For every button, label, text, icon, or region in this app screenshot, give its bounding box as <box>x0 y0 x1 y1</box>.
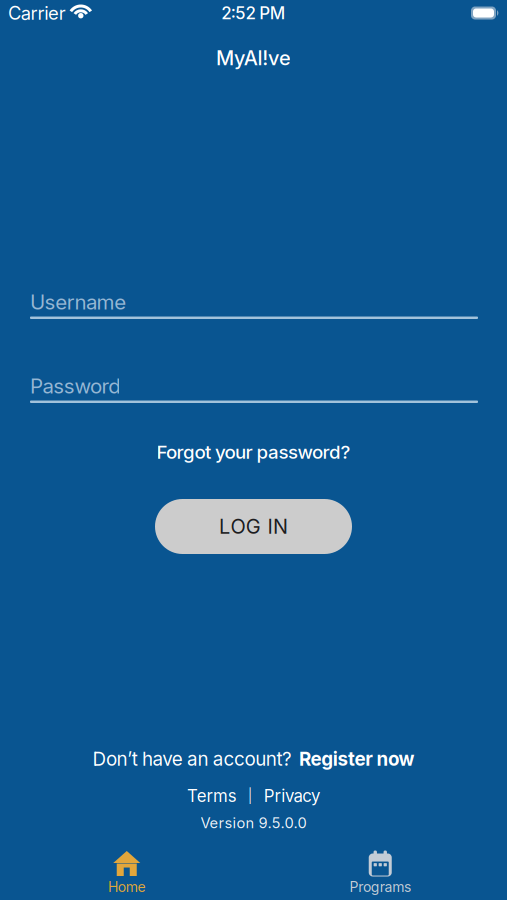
button[interactable]: Terms <box>187 786 237 806</box>
button[interactable]: Don’t have an account? <box>92 748 415 770</box>
staticText: Forgot your password? <box>156 441 350 463</box>
staticText: Programs <box>349 878 411 895</box>
staticText: 2:52 PM <box>221 3 286 23</box>
button[interactable]: LOG IN <box>155 499 352 554</box>
staticText: Register now <box>299 748 415 770</box>
staticText: | <box>248 787 253 804</box>
staticText: Password <box>30 373 121 398</box>
staticText: LOG IN <box>219 514 288 539</box>
button[interactable]: Privacy <box>264 786 320 806</box>
staticText: Home <box>108 878 145 895</box>
staticText: Version 9.5.0.0 <box>200 814 306 832</box>
staticText: Privacy <box>264 786 320 806</box>
staticText: Carrier <box>8 2 66 24</box>
button[interactable]: Programs <box>253 851 507 894</box>
button[interactable]: Home <box>0 851 253 894</box>
button[interactable]: Username <box>30 290 478 319</box>
staticText: Username <box>30 289 126 314</box>
button[interactable]: Password <box>30 374 478 403</box>
staticText: Don’t have an account? <box>92 748 292 770</box>
staticText: MyAl!ve <box>216 46 291 70</box>
button[interactable]: Forgot your password? <box>156 441 350 463</box>
staticText: Terms <box>187 786 237 806</box>
